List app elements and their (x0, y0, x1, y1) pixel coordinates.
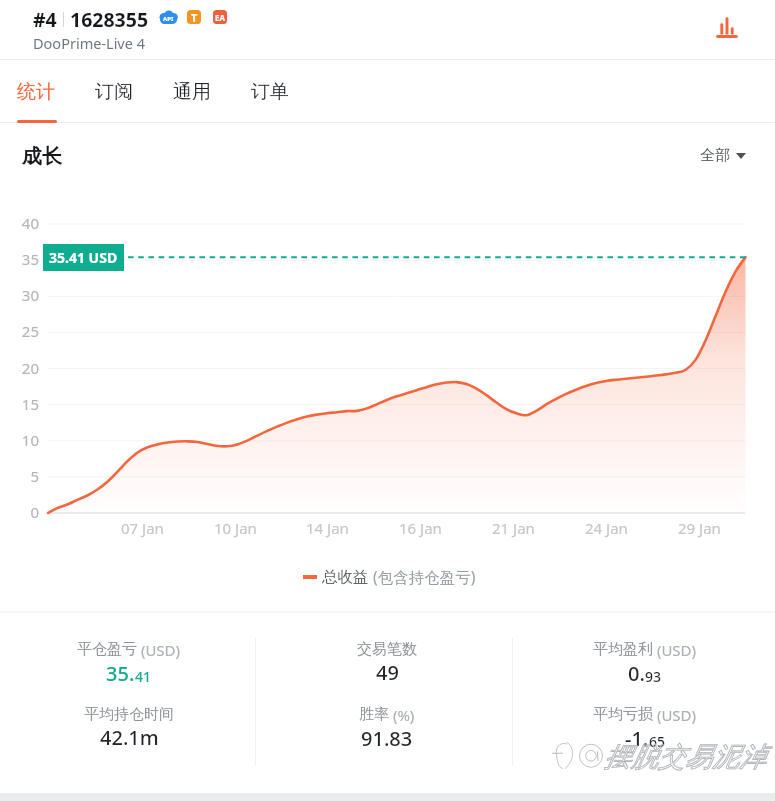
staticText: 35.41 USD (49, 248, 118, 267)
staticText: 平均盈利 (593, 640, 653, 659)
staticText: (USD) (653, 705, 697, 725)
staticText: 42.1m (100, 724, 159, 751)
staticText: -1. (625, 725, 649, 752)
button[interactable]: 交易笔数 (258, 640, 516, 698)
staticText: 25 (0, 321, 39, 341)
button[interactable]: 通用 (154, 60, 232, 123)
button[interactable]: 订单 (232, 60, 310, 123)
staticText: 41 (135, 667, 152, 686)
button[interactable]: 全部 (700, 146, 746, 165)
staticText: 14 Jan (306, 518, 349, 538)
button[interactable]: Statistics (704, 4, 750, 50)
staticText: 通用 (173, 80, 211, 104)
staticText: 5 (0, 466, 39, 486)
staticText: (%) (389, 705, 415, 725)
staticText: 摆脱交易泥淖 (604, 740, 766, 774)
staticText: 35. (106, 660, 135, 687)
staticText: 订单 (251, 80, 289, 104)
staticText: DooPrime-Live 4 (33, 33, 145, 53)
staticText: 20 (0, 358, 39, 378)
staticText: #4 (33, 6, 57, 33)
staticText: 10 (0, 430, 39, 450)
button[interactable]: 平均亏损 (516, 705, 774, 763)
button[interactable]: 平仓盈亏 (0, 640, 258, 698)
button[interactable]: 平均盈利 (516, 640, 774, 698)
staticText: T (191, 10, 198, 24)
staticText: 29 Jan (678, 518, 721, 538)
staticText: 统计 (17, 80, 55, 104)
staticText: EA (215, 12, 226, 23)
staticText: 全部 (700, 146, 730, 165)
staticText: 0 (0, 502, 39, 522)
staticText: 订阅 (95, 80, 133, 104)
staticText: API (163, 15, 174, 23)
button[interactable]: #4 (33, 6, 149, 33)
staticText: 15 (0, 394, 39, 414)
staticText: 总收益 (322, 567, 369, 587)
staticText: 平均亏损 (593, 705, 653, 724)
staticText: (USD) (653, 640, 697, 660)
button[interactable]: 订阅 (76, 60, 154, 123)
button[interactable]: 统计 (0, 60, 76, 123)
staticText: 35 (0, 249, 39, 269)
staticText: 1628355 (70, 6, 149, 33)
staticText: 91.83 (361, 725, 413, 752)
staticText: 成长 (22, 144, 62, 169)
staticText: 0. (628, 660, 645, 687)
staticText: 65 (649, 732, 666, 751)
staticText: 30 (0, 285, 39, 305)
staticText: 24 Jan (585, 518, 628, 538)
button[interactable]: 胜率 (258, 705, 516, 763)
staticText: 平仓盈亏 (77, 640, 137, 659)
staticText: 07 Jan (121, 518, 164, 538)
staticText: 49 (376, 659, 399, 686)
staticText: (USD) (137, 640, 181, 660)
staticText: 平均持仓时间 (84, 705, 174, 724)
button[interactable]: 平均持仓时间 (0, 705, 258, 763)
staticText: 16 Jan (399, 518, 442, 538)
staticText: 40 (0, 213, 39, 233)
staticText: 胜率 (359, 705, 389, 724)
staticText: 93 (645, 667, 662, 686)
staticText: 交易笔数 (357, 640, 417, 659)
staticText: 21 Jan (492, 518, 535, 538)
staticText: (包含持仓盈亏) (369, 566, 476, 587)
staticText: 10 Jan (214, 518, 257, 538)
